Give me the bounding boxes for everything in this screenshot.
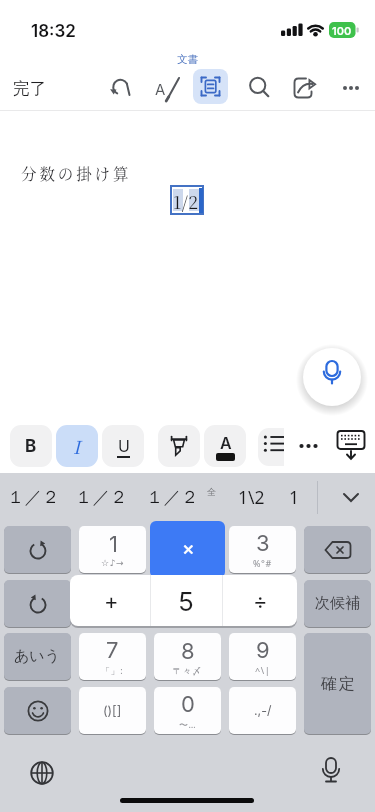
button[interactable]: 8 (154, 633, 221, 680)
button[interactable] (304, 526, 371, 573)
button[interactable] (338, 484, 364, 510)
staticText: 確定 (320, 674, 356, 694)
staticText: ☆♪→ (101, 558, 125, 568)
button[interactable]: 3 (229, 526, 296, 573)
button[interactable] (4, 526, 71, 573)
button[interactable]: A (152, 74, 182, 102)
button[interactable]: 1\2 (141, 475, 361, 519)
staticText: 「」: (101, 664, 124, 676)
button[interactable]: A (204, 425, 246, 467)
staticText: 5 (178, 586, 194, 617)
staticText: 次候補 (315, 594, 360, 613)
staticText: 1 (289, 485, 300, 509)
staticText: 〒々〆 (173, 665, 202, 676)
button[interactable] (258, 428, 284, 466)
button[interactable]: 1 (184, 475, 375, 519)
button[interactable] (338, 76, 364, 100)
button[interactable]: I (56, 425, 98, 467)
staticText: × (182, 537, 195, 560)
staticText: 〜… (179, 718, 197, 730)
staticText: + (104, 588, 119, 615)
staticText: U (118, 436, 130, 455)
staticText: ()[] (103, 703, 122, 718)
button[interactable]: .,-/ (229, 687, 296, 734)
staticText: .,-/ (254, 703, 272, 718)
button[interactable] (193, 69, 228, 104)
staticText: %°# (253, 557, 272, 569)
button[interactable]: 1 (79, 526, 146, 573)
button[interactable]: 0 (154, 687, 221, 734)
button[interactable] (290, 72, 320, 102)
button[interactable] (158, 425, 200, 467)
button[interactable]: 9 (229, 633, 296, 680)
staticText: 1 (109, 531, 118, 558)
staticText: 18:32 (31, 21, 76, 42)
button[interactable]: 7 (79, 633, 146, 680)
button[interactable] (303, 348, 361, 406)
button[interactable] (295, 434, 322, 458)
button[interactable]: B (10, 425, 52, 467)
staticText: B (25, 436, 37, 457)
button[interactable] (4, 687, 71, 734)
staticText: 9 (256, 637, 270, 664)
staticText: 3 (256, 530, 270, 557)
staticText: １／２ (75, 486, 128, 508)
staticText: １／２ (7, 486, 60, 508)
button[interactable]: １／２ (0, 475, 143, 519)
staticText: A (220, 433, 232, 452)
button[interactable]: U (102, 425, 144, 467)
staticText: 8 (181, 638, 195, 665)
staticText: 100 (332, 24, 352, 37)
staticText: A (155, 80, 166, 98)
staticText: ^\| (255, 664, 271, 676)
staticText: １／２ (146, 486, 199, 508)
staticText: 0 (181, 691, 195, 718)
button[interactable] (26, 757, 58, 789)
button[interactable] (245, 73, 274, 102)
staticText: 7 (106, 637, 119, 664)
button[interactable]: １／２ (62, 475, 282, 519)
staticText: 1/2 (173, 189, 199, 214)
button[interactable]: あいう (4, 633, 71, 680)
button[interactable] (150, 521, 225, 578)
staticText: 文書 (177, 53, 198, 66)
staticText: あいう (14, 647, 61, 666)
button[interactable] (4, 580, 71, 627)
button[interactable]: 完了 (0, 66, 59, 110)
button[interactable]: 次候補 (304, 580, 371, 627)
staticText: 1\2 (238, 485, 265, 509)
staticText: 完了 (13, 78, 46, 99)
button[interactable]: ()[] (79, 687, 146, 734)
button[interactable] (107, 74, 135, 102)
button[interactable] (336, 428, 366, 462)
staticText: 分数の掛け算 (21, 162, 132, 184)
staticText: 全 (207, 486, 216, 497)
button[interactable]: 確定 (304, 633, 371, 734)
button[interactable]: １／２ (0, 475, 211, 519)
staticText: ÷ (253, 588, 268, 615)
button[interactable] (315, 755, 347, 791)
staticText: I (73, 433, 81, 459)
